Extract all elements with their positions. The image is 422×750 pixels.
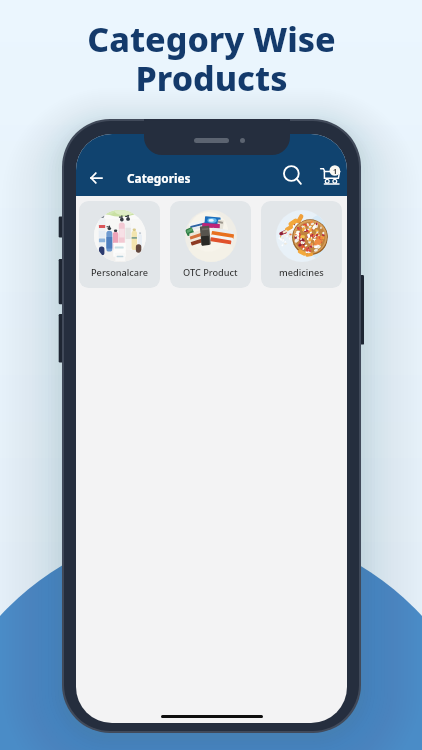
button[interactable]: Personalcare bbox=[79, 201, 160, 288]
button[interactable]: OTC Product bbox=[170, 201, 251, 288]
staticText: Personalcare bbox=[91, 266, 149, 279]
staticText: OTC Product bbox=[183, 266, 238, 279]
button[interactable]: Search bbox=[279, 162, 305, 188]
button[interactable]: Cart bbox=[317, 162, 343, 188]
staticText: medicines bbox=[279, 266, 324, 279]
button[interactable]: Back bbox=[82, 164, 110, 192]
staticText: Category Wise Products bbox=[87, 16, 336, 101]
button[interactable]: medicines bbox=[261, 201, 342, 288]
staticText: Categories bbox=[127, 170, 191, 186]
staticText: 1 bbox=[333, 167, 338, 177]
